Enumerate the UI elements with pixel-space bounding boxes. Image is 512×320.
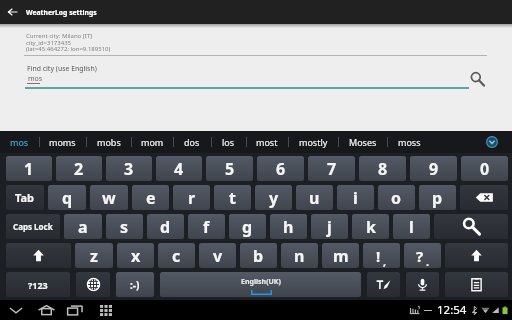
button[interactable]: z: [75, 243, 113, 268]
button[interactable]: 8: [359, 156, 406, 181]
button[interactable]: dos: [173, 131, 211, 153]
staticText: n: [294, 245, 305, 267]
button[interactable]: Voice input: [406, 272, 439, 297]
button[interactable]: All apps: [93, 300, 119, 320]
staticText: l: [409, 216, 414, 238]
staticText: 3: [124, 158, 134, 180]
button[interactable]: q: [48, 185, 86, 210]
staticText: ?123: [28, 279, 48, 291]
staticText: g: [242, 216, 253, 238]
button[interactable]: o: [378, 185, 415, 210]
button[interactable]: u: [296, 185, 333, 210]
button[interactable]: mos: [0, 131, 39, 153]
button[interactable]: mobs: [86, 131, 131, 153]
button[interactable]: ?.: [404, 243, 441, 268]
button[interactable]: 7: [308, 156, 355, 181]
button[interactable]: j: [311, 214, 348, 239]
button[interactable]: l: [393, 214, 430, 239]
button[interactable]: Space: [160, 272, 361, 297]
button[interactable]: h: [270, 214, 307, 239]
staticText: most: [256, 136, 278, 148]
staticText: 12:54: [437, 302, 467, 318]
button[interactable]: m: [322, 243, 359, 268]
button[interactable]: moms: [39, 131, 86, 153]
staticText: x: [131, 245, 141, 267]
staticText: .: [426, 254, 430, 268]
button[interactable]: los: [211, 131, 246, 153]
staticText: j: [327, 216, 332, 238]
button[interactable]: 0: [461, 156, 508, 181]
button[interactable]: i: [337, 185, 374, 210]
staticText: dos: [184, 136, 200, 148]
staticText: d: [160, 216, 171, 238]
staticText: 4: [174, 158, 184, 180]
button[interactable]: 1: [6, 156, 52, 181]
button[interactable]: !,: [363, 243, 400, 268]
button[interactable]: Change keyboard: [76, 272, 110, 297]
button[interactable]: Recent apps: [62, 300, 88, 320]
button[interactable]: s: [106, 214, 143, 239]
button[interactable]: Back: [0, 0, 25, 24]
button[interactable]: d: [147, 214, 184, 239]
staticText: 5: [225, 158, 235, 180]
button[interactable]: 4: [156, 156, 202, 181]
button[interactable]: 6: [257, 156, 304, 181]
staticText: e: [146, 187, 156, 209]
button[interactable]: Caps Lock: [6, 214, 60, 239]
button[interactable]: ?123: [6, 272, 70, 297]
staticText: 8: [378, 158, 388, 180]
button[interactable]: Search: [467, 69, 487, 89]
staticText: !: [376, 246, 381, 266]
button[interactable]: b: [240, 243, 277, 268]
button[interactable]: Home: [33, 300, 59, 320]
button[interactable]: a: [64, 214, 102, 239]
staticText: ,: [383, 254, 387, 268]
staticText: s: [120, 216, 129, 238]
button[interactable]: x: [117, 243, 154, 268]
button[interactable]: mostly: [288, 131, 338, 153]
button[interactable]: g: [229, 214, 266, 239]
button[interactable]: 5: [206, 156, 253, 181]
staticText: los: [222, 136, 235, 148]
staticText: Moses: [349, 136, 377, 148]
button[interactable]: moss: [387, 131, 431, 153]
staticText: 1: [24, 158, 34, 180]
button[interactable]: c: [158, 243, 195, 268]
button[interactable]: y: [255, 185, 292, 210]
button[interactable]: f: [188, 214, 225, 239]
staticText: mom: [141, 136, 164, 148]
button[interactable]: w: [90, 185, 128, 210]
button[interactable]: 3: [106, 156, 152, 181]
button[interactable]: v: [199, 243, 236, 268]
staticText: moms: [49, 136, 76, 148]
button[interactable]: Tab: [6, 185, 44, 210]
button[interactable]: 2: [56, 156, 102, 181]
button[interactable]: Hide keyboard: [3, 300, 29, 320]
button[interactable]: Shift: [6, 243, 71, 268]
button[interactable]: t: [214, 185, 251, 210]
button[interactable]: k: [352, 214, 389, 239]
button[interactable]: Search: [434, 214, 508, 239]
button[interactable]: p: [419, 185, 456, 210]
button[interactable]: 9: [410, 156, 457, 181]
button[interactable]: most: [246, 131, 288, 153]
button[interactable]: Handwriting: [367, 272, 400, 297]
staticText: mobs: [97, 136, 121, 148]
button[interactable]: n: [281, 243, 318, 268]
staticText: mos: [28, 74, 43, 84]
button[interactable]: :-): [116, 272, 154, 297]
button[interactable]: Clipboard: [445, 272, 508, 297]
button[interactable]: More suggestions: [472, 131, 512, 153]
staticText: ?: [416, 246, 424, 266]
button[interactable]: Delete: [460, 185, 508, 210]
button[interactable]: Moses: [338, 131, 387, 153]
button[interactable]: mom: [131, 131, 173, 153]
staticText: Caps Lock: [13, 221, 53, 232]
button[interactable]: r: [173, 185, 210, 210]
button[interactable]: Shift: [445, 243, 508, 268]
button[interactable]: e: [132, 185, 169, 210]
staticText: i: [353, 187, 358, 209]
staticText: 9: [429, 158, 439, 180]
staticText: f: [203, 216, 210, 238]
staticText: Tab: [15, 190, 35, 205]
